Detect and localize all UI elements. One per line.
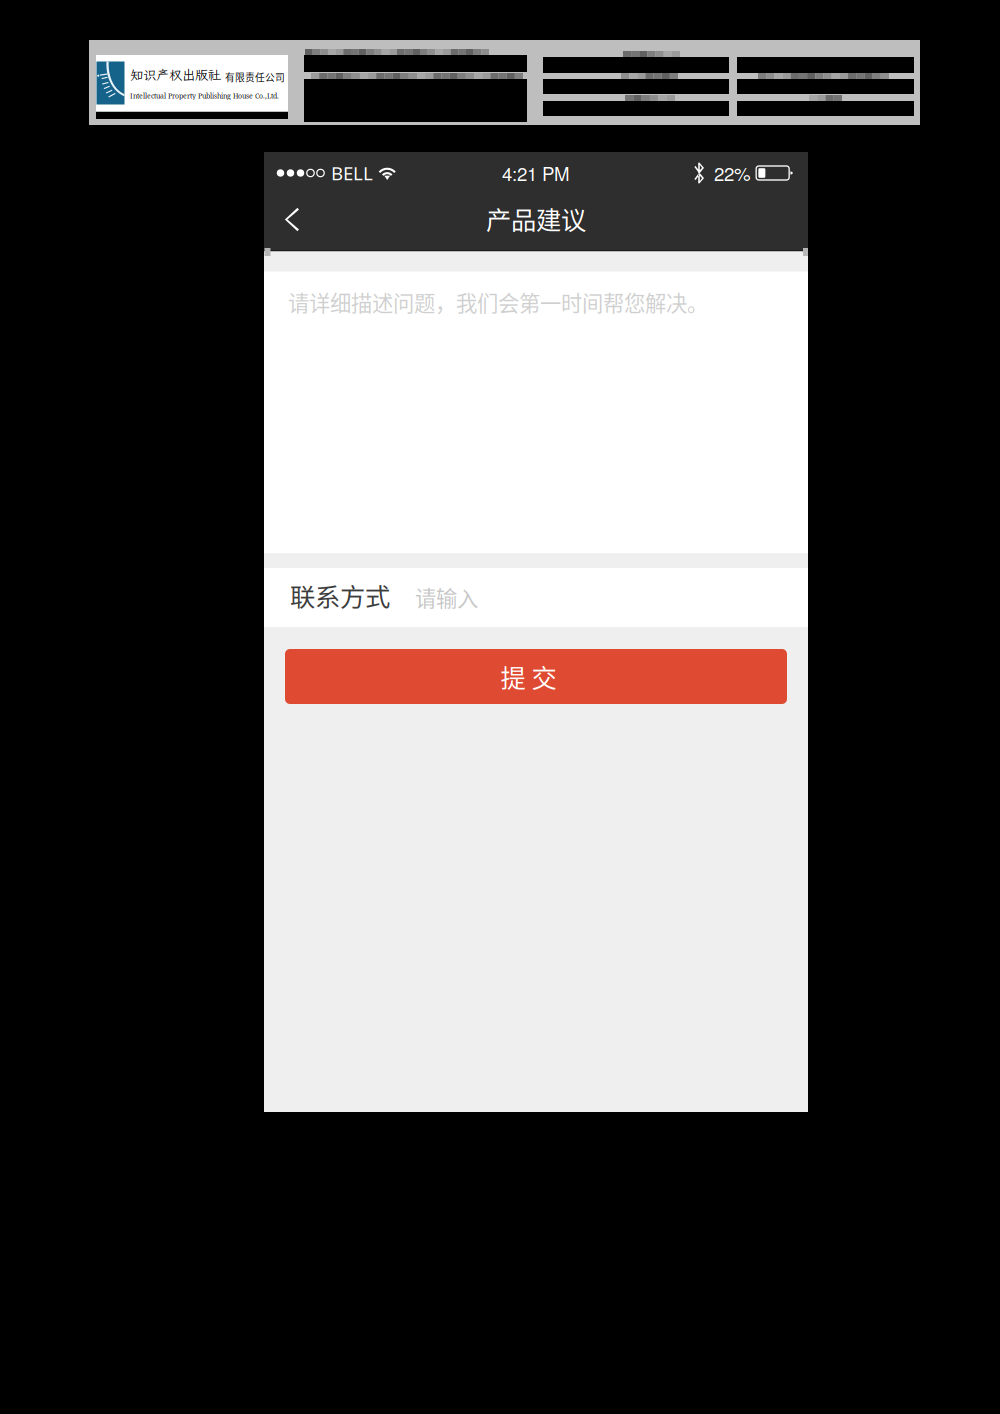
staticText: 请详细描述问题，我们会第一时间帮您解决。 — [288, 286, 708, 317]
staticText: 知识产权出版社 — [130, 66, 221, 84]
staticText: 4:21 PM — [502, 160, 570, 186]
staticText: Intellectual Property Publishing House C… — [130, 91, 279, 100]
staticText: 提 交 — [500, 658, 556, 695]
button[interactable]: 提 交 — [285, 649, 787, 704]
button[interactable]: 请详细描述问题，我们会第一时间帮您解决。 — [264, 271, 808, 553]
staticText: BELL — [331, 161, 373, 185]
button[interactable]: Back — [284, 198, 332, 241]
staticText: 产品建议 — [486, 200, 586, 237]
staticText: 请输入 — [415, 582, 478, 613]
staticText: 22% — [714, 160, 751, 186]
staticText: 联系方式 — [290, 577, 390, 614]
button[interactable]: 联系方式 — [264, 568, 808, 627]
staticText: 有限责任公司 — [225, 70, 285, 84]
